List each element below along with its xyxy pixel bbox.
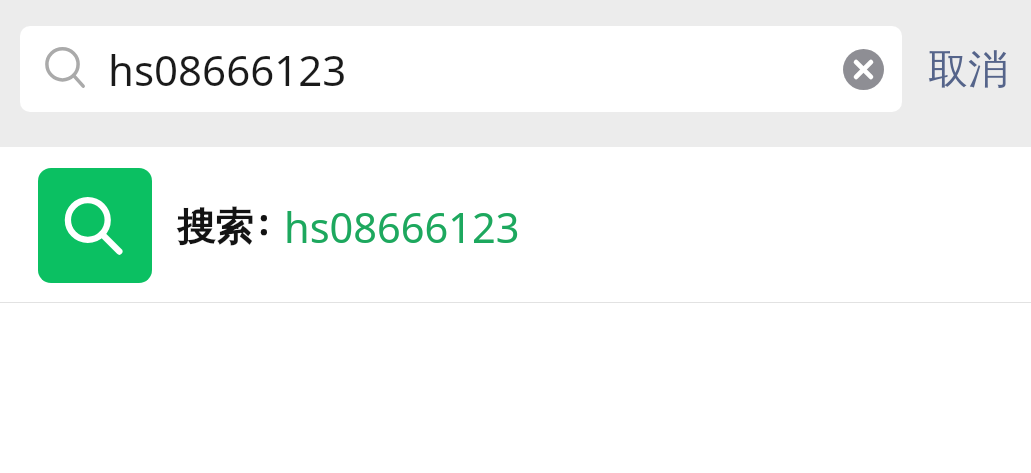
button[interactable]: Search field (20, 26, 902, 112)
button[interactable]: Clear search text (843, 49, 884, 90)
button[interactable]: 取消 (916, 26, 1020, 112)
staticText: 取消 (928, 44, 1008, 94)
button[interactable]: 搜索 (0, 147, 1031, 303)
staticText: hs08666123 (284, 199, 520, 256)
staticText: hs08666123 (108, 41, 347, 98)
staticText: 搜索 (177, 203, 253, 251)
